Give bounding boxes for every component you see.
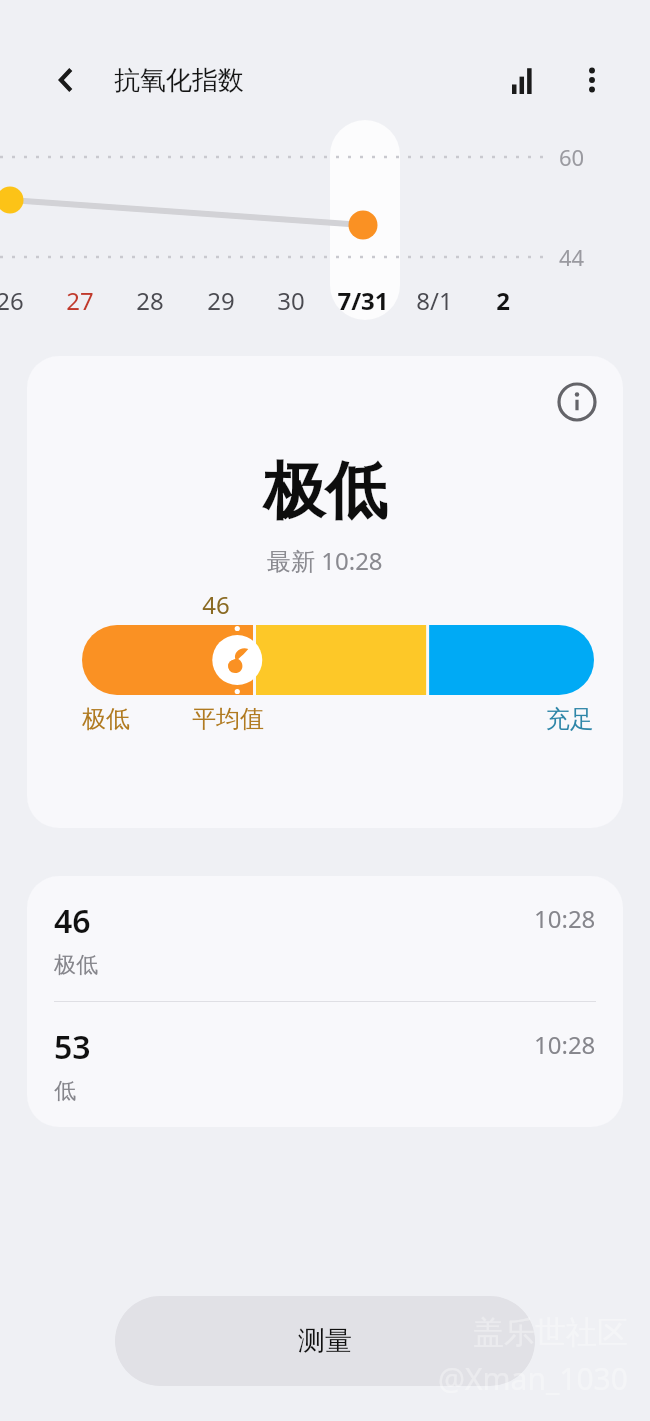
- staticText: 28: [136, 284, 164, 317]
- staticText: 平均值: [192, 704, 264, 734]
- button[interactable]: Back: [44, 58, 88, 102]
- staticText: 极低: [263, 452, 387, 530]
- staticText: 盖乐世社区: [473, 1313, 628, 1352]
- staticText: 8/1: [416, 284, 453, 317]
- staticText: 27: [66, 284, 94, 317]
- staticText: 46: [202, 588, 230, 621]
- staticText: 60: [559, 142, 585, 172]
- button[interactable]: Information: [27, 356, 623, 828]
- staticText: 10:28: [534, 902, 596, 935]
- staticText: 46: [54, 899, 91, 943]
- button[interactable]: 46: [27, 876, 623, 1001]
- staticText: 10:28: [534, 1028, 596, 1061]
- staticText: 极低: [82, 704, 130, 734]
- button[interactable]: More options: [566, 54, 618, 106]
- staticText: 53: [54, 1025, 91, 1069]
- staticText: 极低: [54, 951, 98, 979]
- button[interactable]: Chart: [500, 54, 552, 106]
- staticText: 最新 10:28: [267, 544, 383, 577]
- staticText: 29: [207, 284, 235, 317]
- staticText: 测量: [298, 1324, 352, 1358]
- staticText: 抗氧化指数: [114, 64, 244, 97]
- staticText: 充足: [546, 704, 594, 734]
- staticText: 2: [496, 284, 510, 317]
- staticText: 26: [0, 284, 24, 317]
- button[interactable]: 53: [27, 1002, 623, 1127]
- staticText: 44: [559, 242, 585, 272]
- staticText: 30: [277, 284, 305, 317]
- staticText: @Xman_1030: [438, 1358, 628, 1399]
- button[interactable]: Information: [549, 374, 605, 430]
- staticText: 低: [54, 1077, 76, 1105]
- staticText: 7/31: [337, 284, 389, 317]
- button[interactable]: 测量: [115, 1296, 535, 1386]
